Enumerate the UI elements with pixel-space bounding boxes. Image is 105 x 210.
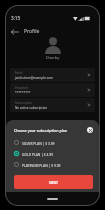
- staticText: SILVER PLAN | $ 3.99: [22, 141, 55, 145]
- staticText: Subscription: [15, 101, 32, 105]
- staticText: Dweby: [46, 55, 60, 61]
- button[interactable]: PLATINUM PLAN | $ 9.99: [14, 159, 93, 170]
- staticText: Email: [15, 71, 23, 75]
- button[interactable]: Subscription: [10, 98, 95, 112]
- staticText: NEXT: [49, 180, 58, 185]
- staticText: *********: [15, 91, 31, 95]
- button[interactable]: SILVER PLAN | $ 3.99: [14, 137, 93, 148]
- button[interactable]: Back: [9, 26, 21, 38]
- staticText: Password: [15, 86, 29, 90]
- button[interactable]: NEXT: [14, 175, 93, 189]
- staticText: 3:15: [11, 15, 21, 21]
- staticText: Choose your subscription plan: [14, 128, 87, 133]
- staticText: PLATINUM PLAN | $ 9.99: [22, 163, 61, 167]
- button[interactable]: Email: [10, 68, 95, 82]
- staticText: jwickstrom@example.com: [15, 76, 53, 80]
- staticText: No active subscription: [15, 106, 48, 110]
- button[interactable]: GOLD PLAN | $ 4.99: [14, 148, 93, 159]
- staticText: Profile: [24, 28, 40, 35]
- staticText: GOLD PLAN | $ 4.99: [22, 152, 54, 156]
- button[interactable]: Password: [10, 83, 95, 97]
- button[interactable]: Close: [87, 127, 93, 133]
